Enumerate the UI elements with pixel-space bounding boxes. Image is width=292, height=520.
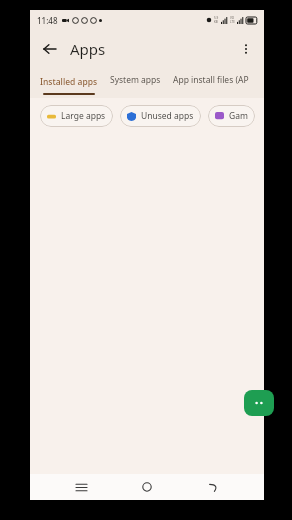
staticText: App install files (AP: [173, 74, 249, 86]
staticText: Gam: [229, 110, 248, 122]
button[interactable]: Scan apps: [244, 390, 274, 416]
staticText: Installed apps: [40, 76, 98, 88]
staticText: System apps: [110, 74, 161, 86]
button[interactable]: App install files (AP: [173, 68, 249, 98]
button[interactable]: Back: [198, 474, 228, 500]
button[interactable]: Unused apps: [120, 105, 201, 127]
button[interactable]: Gam: [208, 105, 255, 127]
button[interactable]: Recent apps: [66, 474, 96, 500]
staticText: VO LTE: [230, 16, 235, 24]
button[interactable]: Home: [132, 474, 162, 500]
staticText: Unused apps: [141, 110, 194, 122]
button[interactable]: Back: [38, 37, 62, 61]
staticText: Apps: [70, 39, 106, 59]
button[interactable]: System apps: [110, 68, 161, 98]
button[interactable]: Large apps: [40, 105, 113, 127]
staticText: 11:48: [37, 15, 58, 26]
staticText: 5.9 KB: [214, 16, 219, 24]
button[interactable]: More options: [235, 38, 257, 60]
button[interactable]: Installed apps: [40, 68, 98, 98]
staticText: Large apps: [61, 110, 106, 122]
